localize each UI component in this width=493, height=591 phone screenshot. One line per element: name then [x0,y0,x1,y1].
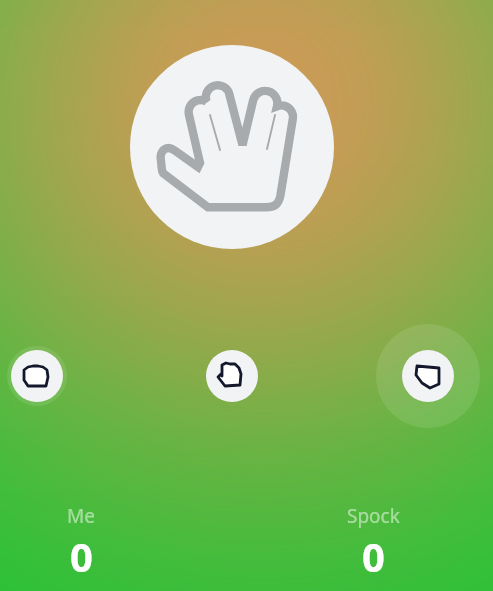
button[interactable]: Scissors [402,350,454,402]
button[interactable]: Rock [11,350,63,402]
staticText: Me [67,503,95,529]
button[interactable]: Spock [130,45,334,249]
staticText: Spock [347,503,400,529]
staticText: 0 [362,529,385,573]
button[interactable]: Paper [206,350,258,402]
staticText: 0 [70,529,93,573]
